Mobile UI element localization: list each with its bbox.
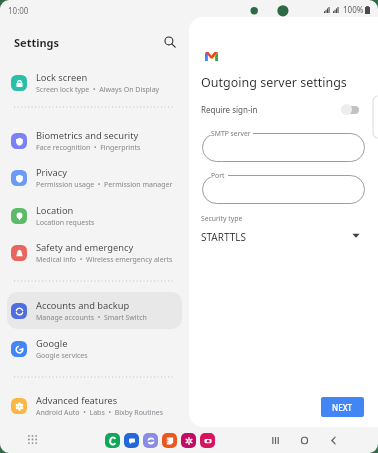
button[interactable]: Privacy — [0, 159, 189, 196]
staticText: Accounts and backup — [36, 299, 130, 312]
button[interactable]: Require sign-in — [189, 98, 366, 120]
staticText: Permission usage • Permission manager — [36, 180, 173, 190]
staticText: Require sign-in — [201, 104, 258, 115]
button[interactable]: Phone — [105, 433, 120, 448]
staticText: Biometrics and security — [36, 129, 139, 142]
button[interactable]: Gallery — [181, 433, 196, 448]
staticText: Android Auto • Labs • Bixby Routines — [36, 408, 164, 418]
button[interactable]: Google — [0, 330, 189, 367]
staticText: Lock screen — [36, 71, 88, 84]
button[interactable]: Search — [160, 32, 180, 52]
button[interactable]: Messages — [124, 433, 139, 448]
staticText: Google services — [36, 351, 88, 361]
button[interactable]: Location — [0, 197, 189, 234]
staticText: 10:00 — [8, 5, 29, 16]
staticText: Medical info • Wireless emergency alerts — [36, 255, 173, 265]
button[interactable]: Home — [295, 431, 313, 449]
staticText: Settings — [14, 35, 60, 50]
staticText: Outgoing server settings — [201, 74, 347, 91]
staticText: Face recognition • Fingerprints — [36, 143, 141, 153]
button[interactable]: Recents — [266, 431, 284, 449]
button[interactable]: Back — [324, 431, 342, 449]
staticText: Security type — [201, 214, 243, 223]
staticText: Screen lock type • Always On Display — [36, 85, 160, 95]
button[interactable]: Safety and emergency — [0, 234, 189, 271]
button[interactable]: Notes — [162, 433, 177, 448]
button[interactable]: STARTTLS — [189, 228, 364, 246]
button[interactable]: Internet — [143, 433, 158, 448]
button[interactable]: NEXT — [321, 397, 364, 417]
staticText: Port — [211, 171, 225, 180]
button[interactable]: Apps — [22, 429, 42, 449]
button[interactable]: Camera — [200, 433, 215, 448]
staticText: Location — [36, 204, 74, 217]
staticText: Privacy — [36, 166, 68, 179]
staticText: NEXT — [332, 402, 353, 413]
button[interactable]: Lock screen — [0, 64, 189, 101]
staticText: Manage accounts • Smart Switch — [36, 313, 147, 323]
staticText: Safety and emergency — [36, 241, 134, 254]
staticText: SMTP server — [211, 129, 251, 138]
button[interactable]: Biometrics and security — [0, 122, 189, 159]
staticText: STARTTLS — [201, 230, 247, 244]
staticText: 100% — [343, 4, 364, 15]
staticText: Location requests — [36, 218, 95, 228]
staticText: Google — [36, 337, 68, 350]
button[interactable]: Advanced features — [0, 387, 189, 424]
staticText: Advanced features — [36, 394, 118, 407]
button[interactable]: Accounts and backup — [7, 292, 182, 329]
